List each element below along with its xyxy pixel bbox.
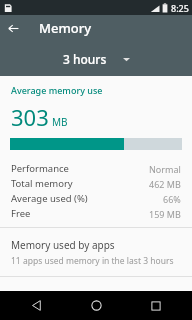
staticText: MB	[52, 115, 68, 129]
staticText: Average used (%)	[11, 192, 88, 205]
button[interactable]: 3 hours	[63, 51, 130, 67]
staticText: 8:25	[171, 2, 189, 14]
staticText: 3 hours	[63, 51, 107, 67]
staticText: Free	[11, 207, 31, 220]
button[interactable]: Home	[72, 291, 120, 320]
staticText: 462 MB	[149, 178, 181, 190]
staticText: Memory used by apps	[11, 238, 115, 252]
staticText: 159 MB	[149, 208, 181, 220]
staticText: 11 apps used memory in the last 3 hours	[11, 255, 174, 267]
staticText: 66%	[163, 193, 181, 205]
staticText: Average memory use	[11, 84, 103, 96]
staticText: 303	[11, 102, 49, 132]
staticText: Total memory	[11, 177, 73, 190]
button[interactable]: Recent apps	[132, 291, 180, 320]
button[interactable]: Navigate up	[0, 15, 26, 41]
button[interactable]: Back	[12, 291, 60, 320]
staticText: Normal	[149, 163, 181, 175]
staticText: Performance	[11, 162, 69, 175]
button[interactable]: Memory used by apps	[0, 237, 192, 272]
staticText: Memory	[39, 19, 92, 37]
